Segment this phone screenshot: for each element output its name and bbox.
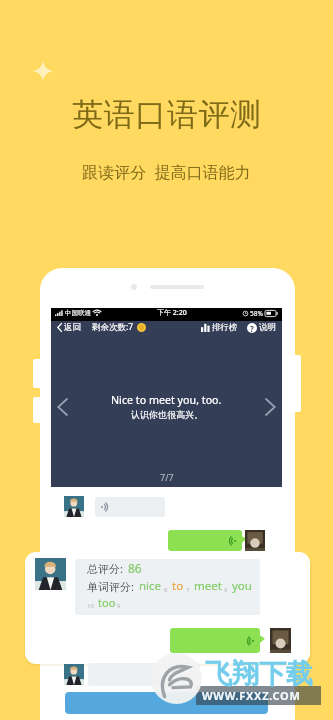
- staticText: 认识你也很高兴。: [131, 409, 203, 420]
- staticText: 中国联通: [65, 309, 91, 317]
- staticText: meet: [194, 578, 222, 594]
- staticText: 剩余次数:7: [92, 321, 134, 333]
- staticText: 排行榜: [212, 322, 238, 333]
- staticText: 9: [117, 602, 121, 610]
- staticText: 86: [128, 560, 142, 576]
- staticText: 总评分:: [87, 561, 123, 576]
- staticText: 下午 2:20: [157, 308, 187, 318]
- staticText: 7: [186, 586, 190, 594]
- staticText: 9: [224, 586, 228, 594]
- staticText: 说明: [259, 322, 276, 333]
- staticText: 返回: [64, 322, 81, 333]
- staticText: 单词评分:: [87, 579, 134, 594]
- staticText: nice: [139, 578, 162, 594]
- staticText: 英语口语评测: [72, 95, 262, 134]
- staticText: too: [98, 595, 116, 610]
- button[interactable]: Previous sentence: [57, 398, 68, 416]
- button[interactable]: ?: [246, 322, 277, 333]
- staticText: 8: [164, 586, 168, 594]
- staticText: 58%: [250, 309, 263, 318]
- button[interactable]: Next sentence: [265, 398, 276, 416]
- staticText: 跟读评分 提高口语能力: [82, 161, 251, 183]
- staticText: WWW.FXXZ.COM: [202, 688, 301, 703]
- button[interactable]: 返回: [56, 322, 82, 333]
- staticText: Nice to meet you, too.: [111, 393, 222, 408]
- staticText: 飞翔下载: [205, 657, 313, 691]
- button[interactable]: [65, 692, 268, 714]
- button[interactable]: 排行榜: [200, 322, 239, 333]
- button[interactable]: [95, 497, 165, 517]
- button[interactable]: [170, 628, 265, 653]
- staticText: you: [232, 578, 252, 594]
- staticText: ?: [250, 323, 254, 333]
- staticText: to: [172, 578, 184, 594]
- staticText: 10: [87, 602, 94, 610]
- staticText: 7/7: [160, 471, 174, 483]
- button[interactable]: [168, 530, 247, 551]
